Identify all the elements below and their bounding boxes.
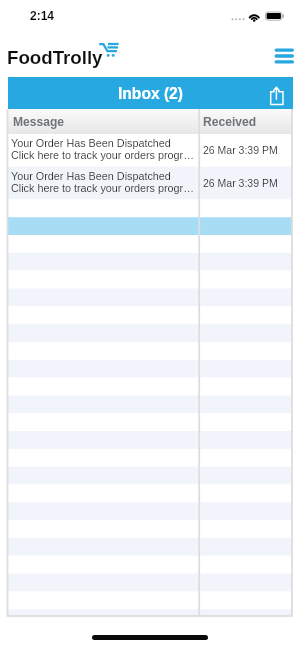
staticText: Click here to track your orders progr… [11, 182, 195, 194]
button[interactable]: Your Order Has Been Dispatched [8, 134, 293, 167]
staticText: FoodTrolly [7, 47, 103, 68]
staticText: Click here to track your orders progr… [11, 149, 195, 161]
button[interactable]: Menu [274, 46, 293, 65]
staticText: 2:14 [30, 9, 55, 22]
staticText: 26 Mar 3:39 PM [203, 177, 278, 189]
staticText: Received [203, 115, 257, 129]
button[interactable]: Share [270, 84, 284, 102]
staticText: Message [13, 115, 65, 129]
staticText: 26 Mar 3:39 PM [203, 144, 278, 156]
staticText: Your Order Has Been Dispatched [11, 170, 171, 182]
staticText: Your Order Has Been Dispatched [11, 137, 171, 149]
staticText: Inbox (2) [118, 85, 183, 102]
button[interactable]: Inbox (2) [8, 77, 293, 109]
button[interactable]: Your Order Has Been Dispatched [8, 167, 293, 200]
